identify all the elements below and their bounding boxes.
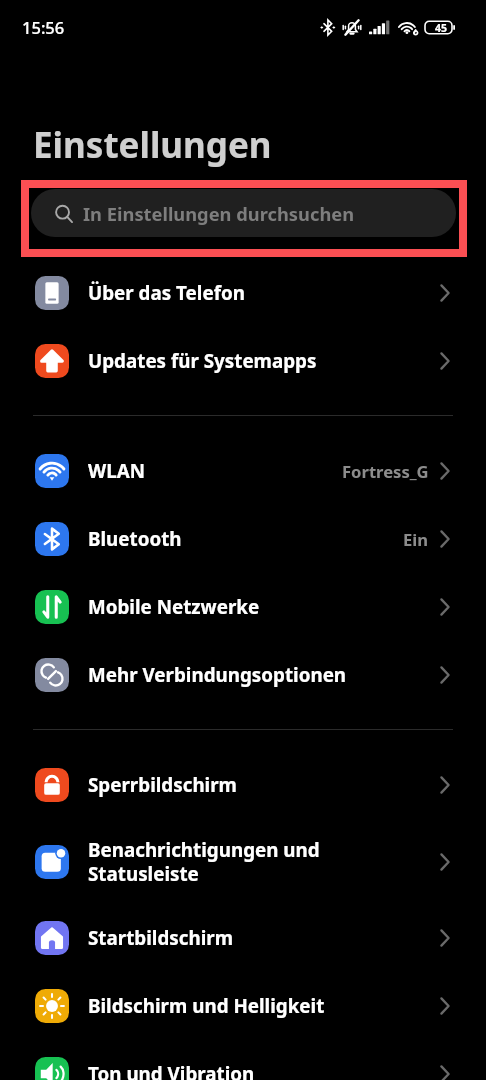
staticText: Über das Telefon (88, 280, 440, 306)
button[interactable]: Startbildschirm (0, 904, 486, 972)
staticText: Mehr Verbindungsoptionen (88, 662, 440, 688)
button[interactable]: Mobile Netzwerke (0, 573, 486, 641)
staticText: 45 (435, 21, 448, 35)
button[interactable]: Benachrichtigungen und Statusleiste (0, 819, 486, 904)
button[interactable]: Bildschirm und Helligkeit (0, 972, 486, 1040)
staticText: Bildschirm und Helligkeit (88, 993, 440, 1019)
button[interactable]: In Einstellungen durchsuchen (31, 189, 456, 237)
button[interactable]: WLAN (0, 437, 486, 505)
button[interactable]: Updates für Systemapps (0, 327, 486, 395)
button[interactable]: Über das Telefon (0, 259, 486, 327)
staticText: Bluetooth (88, 526, 403, 552)
staticText: WLAN (88, 458, 342, 484)
button[interactable]: Mehr Verbindungsoptionen (0, 641, 486, 709)
button[interactable]: Sperrbildschirm (0, 751, 486, 819)
staticText: Sperrbildschirm (88, 772, 440, 798)
staticText: Ton und Vibration (88, 1061, 440, 1080)
staticText: Ein (403, 528, 429, 551)
staticText: 15:56 (22, 16, 65, 38)
staticText: Fortress_G (342, 460, 429, 483)
staticText: Einstellungen (33, 121, 272, 169)
staticText: Mobile Netzwerke (88, 594, 440, 620)
staticText: In Einstellungen durchsuchen (83, 201, 355, 226)
staticText: Benachrichtigungen und Statusleiste (88, 837, 440, 886)
staticText: Updates für Systemapps (88, 348, 440, 374)
button[interactable]: Bluetooth (0, 505, 486, 573)
button[interactable]: Ton und Vibration (0, 1040, 486, 1080)
staticText: Startbildschirm (88, 925, 440, 951)
